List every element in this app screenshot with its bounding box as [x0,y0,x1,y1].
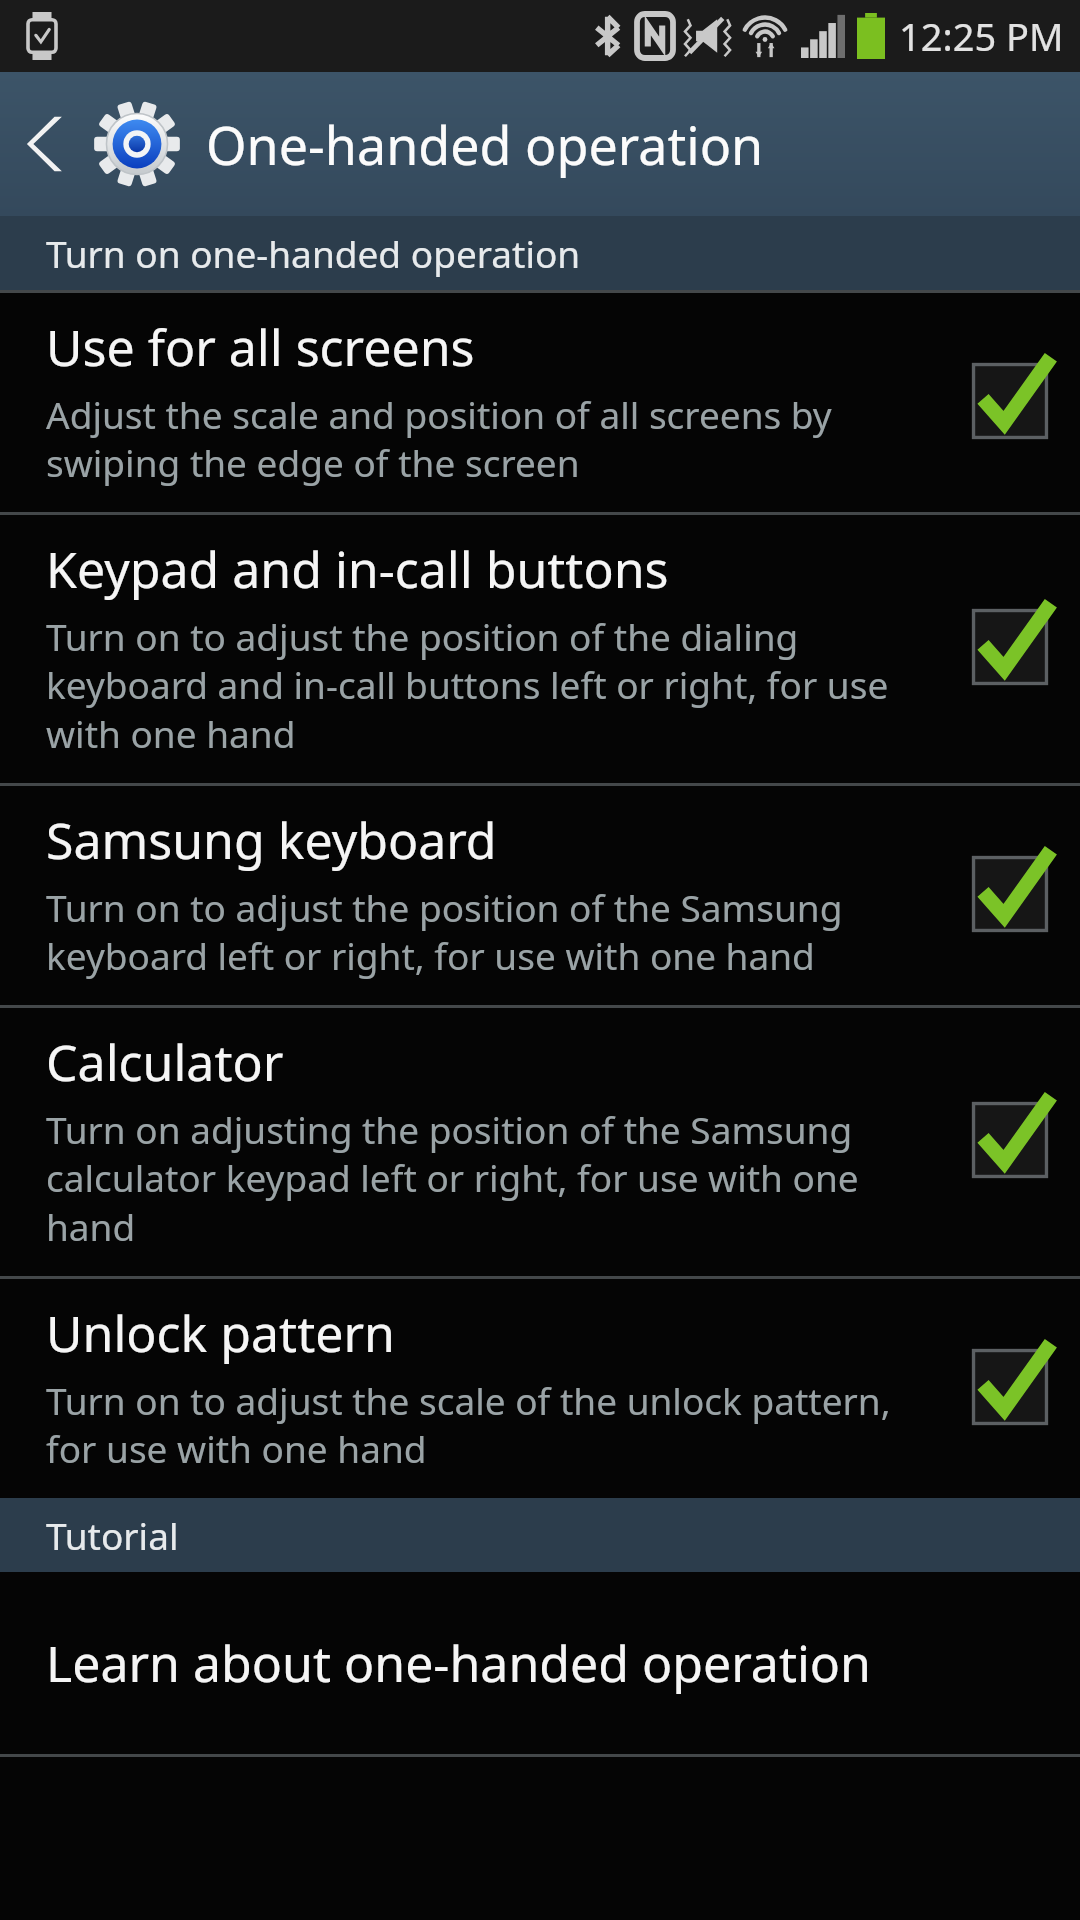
staticText: Learn about one-handed operation [46,1629,871,1697]
button[interactable]: Calculator [0,1008,1080,1276]
staticText: Adjust the scale and position of all scr… [46,389,948,488]
staticText: Tutorial [46,1510,179,1560]
button[interactable]: Learn about one-handed operation [0,1572,1080,1754]
staticText: Turn on to adjust the position of the Sa… [46,882,948,981]
staticText: Unlock pattern [46,1299,395,1367]
staticText: Samsung keyboard [46,806,497,874]
staticText: One-handed operation [206,109,764,180]
button[interactable]: Use for all screens [0,293,1080,512]
staticText: 12:25 PM [899,10,1064,62]
staticText: Turn on to adjust the scale of the unloc… [46,1375,948,1474]
staticText: Use for all screens [46,313,475,381]
button[interactable]: Samsung keyboard [0,786,1080,1005]
staticText: Turn on adjusting the position of the Sa… [46,1104,948,1252]
staticText: Calculator [46,1028,284,1096]
staticText: Turn on to adjust the position of the di… [46,611,948,759]
button[interactable]: Navigate up [0,72,1080,216]
staticText: Keypad and in-call buttons [46,535,669,603]
button[interactable]: Keypad and in-call buttons [0,515,1080,783]
button[interactable]: Unlock pattern [0,1279,1080,1498]
staticText: Turn on one-handed operation [46,228,581,278]
button[interactable]: Navigate up [26,113,72,175]
